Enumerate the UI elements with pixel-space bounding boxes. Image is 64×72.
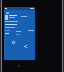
button[interactable]: Location: [11, 40, 15, 44]
button[interactable]: Menu: [5, 11, 9, 15]
button[interactable]: Share: [23, 44, 27, 48]
